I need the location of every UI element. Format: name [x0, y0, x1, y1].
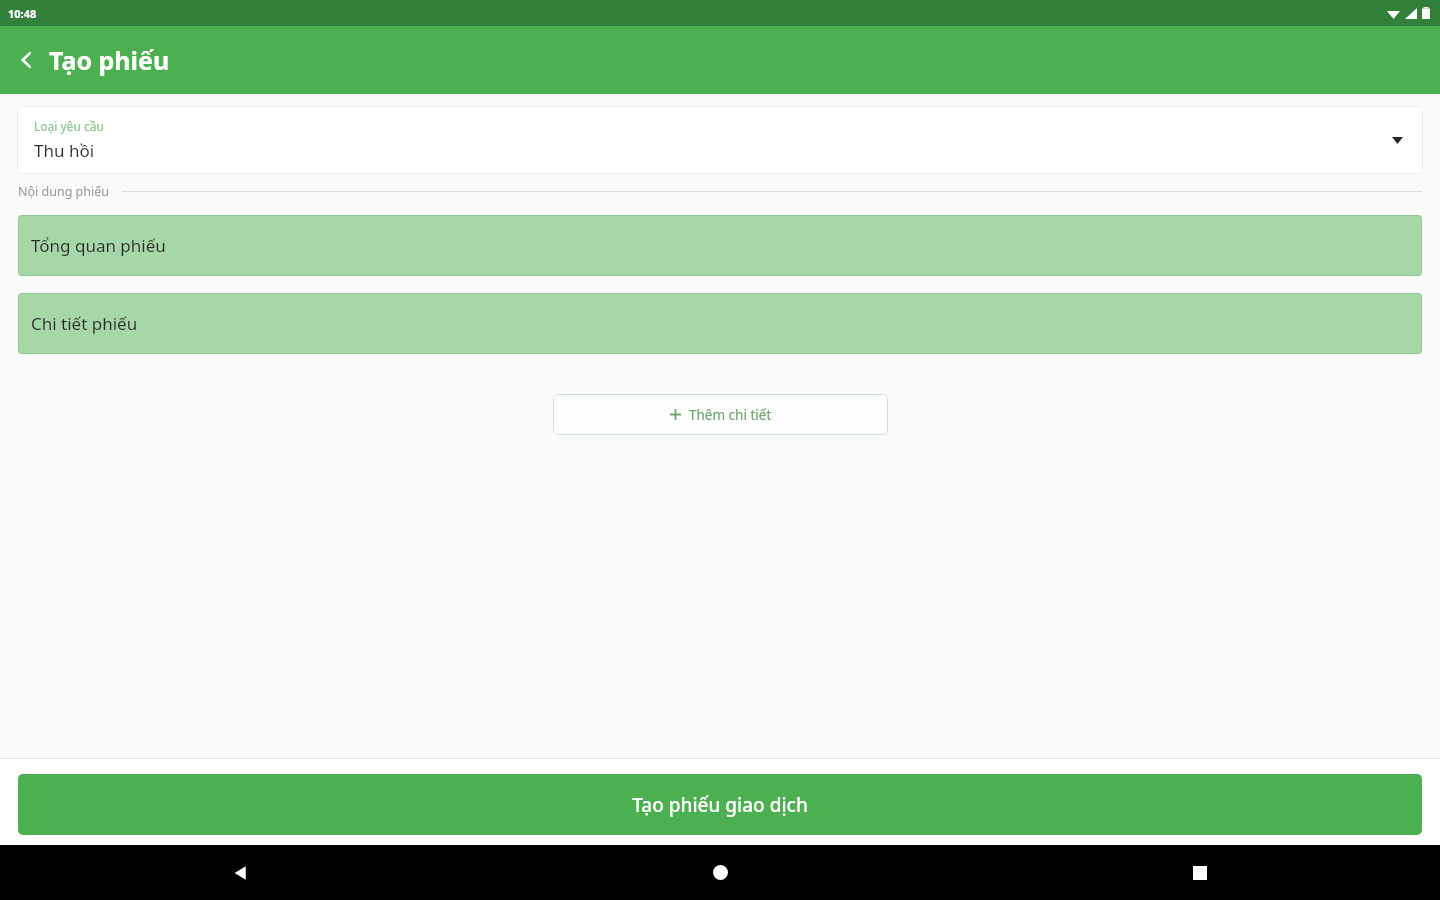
button[interactable]: Recent apps — [960, 845, 1440, 900]
staticText: Tổng quan phiếu — [31, 234, 166, 257]
button[interactable]: Tổng quan phiếu — [18, 215, 1422, 276]
staticText: 10:48 — [8, 6, 37, 21]
staticText: Tạo phiếu giao dịch — [632, 792, 808, 818]
button[interactable]: Chi tiết phiếu — [18, 293, 1422, 354]
staticText: Chi tiết phiếu — [31, 312, 138, 335]
button[interactable]: Back — [10, 43, 44, 77]
button[interactable]: Back — [0, 845, 480, 900]
button[interactable]: Home — [480, 845, 960, 900]
staticText: Nội dung phiếu — [18, 183, 110, 200]
staticText: Loại yêu cầu — [34, 118, 104, 134]
staticText: Thêm chi tiết — [689, 406, 772, 424]
button[interactable]: Tạo phiếu giao dịch — [18, 774, 1422, 835]
button[interactable]: Thêm chi tiết — [553, 394, 888, 435]
staticText: Thu hồi — [34, 139, 95, 162]
staticText: Tạo phiếu — [49, 43, 170, 77]
button[interactable]: Loại yêu cầu — [17, 106, 1423, 174]
